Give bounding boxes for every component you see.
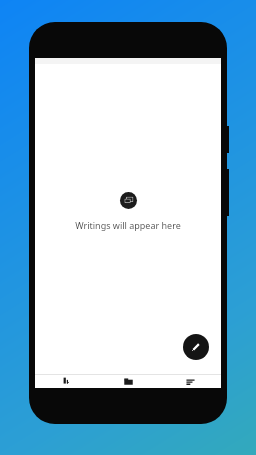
button[interactable]: List view [159, 374, 221, 388]
staticText: Writings will appear here [75, 219, 181, 231]
button[interactable]: Folders [97, 374, 159, 388]
button[interactable]: Sort [35, 374, 97, 388]
button[interactable]: Compose new writing [183, 334, 209, 360]
